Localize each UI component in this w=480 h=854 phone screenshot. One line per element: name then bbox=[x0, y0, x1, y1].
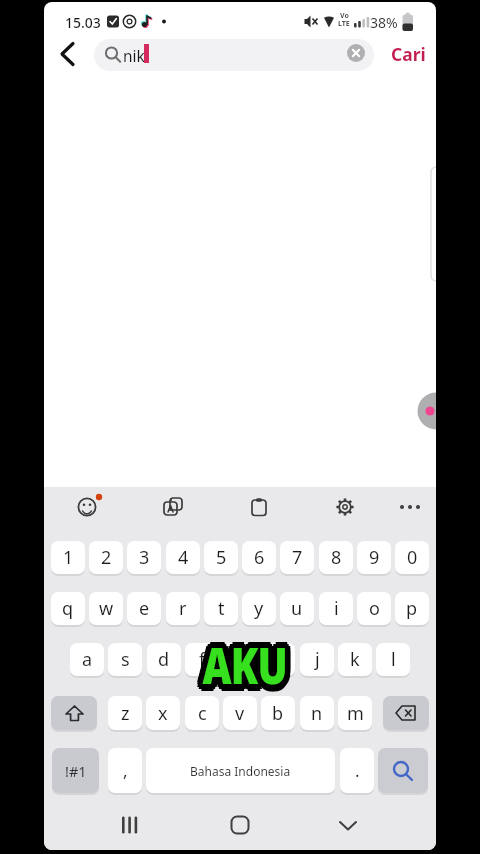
button[interactable]: e bbox=[127, 592, 161, 625]
button[interactable] bbox=[108, 803, 152, 847]
button[interactable]: j bbox=[300, 643, 334, 676]
staticText: . bbox=[355, 759, 360, 782]
button[interactable]: 0 bbox=[395, 541, 429, 574]
button[interactable]: 3 bbox=[127, 541, 161, 574]
staticText: AKU bbox=[208, 631, 293, 699]
button[interactable]: n bbox=[300, 696, 334, 730]
staticText: m bbox=[347, 701, 364, 726]
staticText: AKU bbox=[199, 636, 283, 704]
staticText: 1 bbox=[63, 545, 74, 570]
button[interactable] bbox=[155, 489, 191, 525]
button[interactable]: d bbox=[147, 643, 181, 676]
button[interactable]: h bbox=[261, 643, 295, 676]
button[interactable] bbox=[378, 748, 428, 793]
staticText: 2 bbox=[101, 545, 112, 570]
button[interactable] bbox=[241, 489, 277, 525]
button[interactable] bbox=[392, 489, 428, 525]
staticText: k bbox=[350, 647, 360, 672]
staticText: AKU bbox=[208, 629, 293, 697]
staticText: b bbox=[272, 701, 284, 726]
staticText: 38% bbox=[370, 13, 398, 32]
staticText: p bbox=[406, 596, 418, 621]
button[interactable]: l bbox=[376, 643, 410, 676]
button[interactable]: 9 bbox=[357, 541, 391, 574]
button[interactable]: 6 bbox=[242, 541, 276, 574]
staticText: q bbox=[62, 596, 74, 621]
staticText: Cari bbox=[391, 42, 426, 66]
button[interactable]: Bahasa Indonesia bbox=[146, 748, 335, 793]
button[interactable] bbox=[52, 40, 84, 70]
button[interactable]: u bbox=[280, 592, 314, 625]
staticText: z bbox=[121, 701, 130, 726]
staticText: Bahasa Indonesia bbox=[190, 763, 291, 779]
button[interactable]: i bbox=[319, 592, 353, 625]
staticText: 7 bbox=[292, 545, 303, 570]
button[interactable] bbox=[326, 803, 370, 847]
button[interactable]: v bbox=[223, 696, 257, 730]
staticText: , bbox=[123, 759, 128, 782]
button[interactable]: w bbox=[89, 592, 123, 625]
button[interactable]: p bbox=[395, 592, 429, 625]
staticText: h bbox=[272, 647, 284, 672]
staticText: LTE bbox=[338, 19, 350, 29]
staticText: 9 bbox=[369, 545, 380, 570]
staticText: AKU bbox=[208, 634, 293, 702]
button[interactable]: a bbox=[70, 643, 104, 676]
button[interactable]: r bbox=[166, 592, 200, 625]
staticText: 8 bbox=[331, 545, 342, 570]
button[interactable]: 1 bbox=[51, 541, 85, 574]
button[interactable]: nik bbox=[94, 39, 374, 71]
button[interactable]: , bbox=[108, 748, 142, 793]
button[interactable]: 8 bbox=[319, 541, 353, 574]
button[interactable]: q bbox=[51, 592, 85, 625]
staticText: AKU bbox=[203, 638, 287, 706]
button[interactable]: y bbox=[242, 592, 276, 625]
staticText: AKU bbox=[207, 636, 291, 704]
staticText: a bbox=[82, 647, 93, 672]
staticText: w bbox=[99, 596, 114, 621]
button[interactable] bbox=[347, 44, 365, 62]
button[interactable]: s bbox=[108, 643, 142, 676]
button[interactable]: 2 bbox=[89, 541, 123, 574]
button[interactable]: c bbox=[185, 696, 219, 730]
staticText: AKU bbox=[197, 634, 282, 702]
button[interactable]: x bbox=[146, 696, 180, 730]
button[interactable]: g bbox=[223, 643, 257, 676]
staticText: n bbox=[311, 701, 323, 726]
staticText: r bbox=[179, 596, 187, 621]
button[interactable]: m bbox=[338, 696, 372, 730]
button[interactable]: b bbox=[261, 696, 295, 730]
button[interactable]: !#1 bbox=[52, 748, 99, 793]
button[interactable] bbox=[51, 696, 97, 730]
button[interactable]: 4 bbox=[166, 541, 200, 574]
staticText: s bbox=[121, 647, 130, 672]
staticText: AKU bbox=[197, 631, 282, 699]
staticText: 15.03 bbox=[65, 13, 101, 32]
button[interactable]: z bbox=[108, 696, 142, 730]
button[interactable] bbox=[327, 489, 363, 525]
button[interactable]: 7 bbox=[280, 541, 314, 574]
button[interactable]: Cari bbox=[384, 40, 432, 68]
staticText: i bbox=[334, 596, 339, 621]
button[interactable] bbox=[383, 696, 429, 730]
button[interactable] bbox=[218, 803, 262, 847]
button[interactable]: f bbox=[185, 643, 219, 676]
staticText: v bbox=[235, 701, 245, 726]
staticText: AKU bbox=[199, 627, 283, 695]
staticText: AKU bbox=[205, 638, 290, 706]
staticText: d bbox=[158, 647, 170, 672]
button[interactable]: 5 bbox=[204, 541, 238, 574]
button[interactable]: t bbox=[204, 592, 238, 625]
staticText: t bbox=[218, 596, 225, 621]
staticText: j bbox=[315, 647, 320, 672]
staticText: 5 bbox=[216, 545, 227, 570]
button[interactable]: . bbox=[340, 748, 374, 793]
staticText: g bbox=[234, 647, 246, 672]
button[interactable] bbox=[69, 489, 105, 525]
button[interactable]: k bbox=[338, 643, 372, 676]
staticText: e bbox=[139, 596, 150, 621]
staticText: 3 bbox=[139, 545, 150, 570]
staticText: AKU bbox=[201, 625, 286, 693]
staticText: l bbox=[391, 647, 396, 672]
button[interactable]: o bbox=[357, 592, 391, 625]
